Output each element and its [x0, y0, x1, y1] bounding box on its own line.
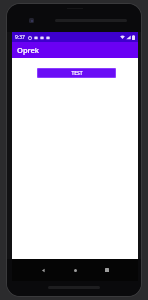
button[interactable]: Home: [69, 264, 81, 276]
staticText: TEST: [71, 70, 83, 77]
button[interactable]: Back: [37, 264, 49, 276]
staticText: Oprek: [17, 45, 40, 55]
button[interactable]: TEST: [38, 69, 115, 77]
staticText: 9:37: [15, 34, 25, 41]
button[interactable]: Recent apps: [101, 264, 113, 276]
